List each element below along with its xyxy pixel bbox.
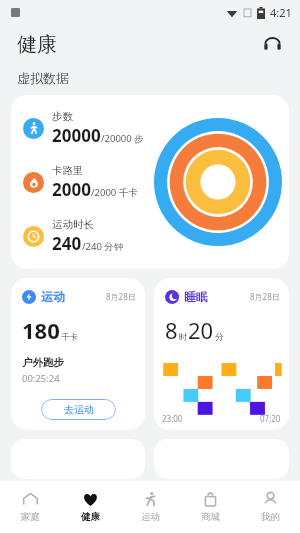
button[interactable]: 运动 [120, 481, 180, 533]
staticText: /2000 千卡 [91, 186, 138, 199]
staticText: 运动 [141, 511, 160, 523]
staticText: 00:25:24 [22, 372, 60, 385]
staticText: 步数 [52, 110, 73, 123]
staticText: 虚拟数据 [17, 70, 69, 86]
button[interactable]: 睡眠 [154, 278, 289, 430]
staticText: 卡路里 [52, 164, 84, 177]
staticText: 07:20 [260, 413, 281, 424]
staticText: 20 [188, 315, 214, 345]
staticText: 4:21 [270, 5, 292, 20]
staticText: 180 [22, 315, 60, 345]
staticText: 健康 [17, 32, 57, 57]
staticText: 20000 [52, 124, 101, 147]
staticText: 商城 [201, 511, 220, 523]
button[interactable]: 去运动 [41, 399, 116, 420]
staticText: 运动时长 [52, 218, 94, 231]
staticText: 我的 [261, 511, 280, 523]
staticText: /20000 步 [101, 132, 144, 145]
staticText: 分 [215, 332, 224, 343]
staticText: 家庭 [21, 511, 40, 523]
staticText: 健康 [81, 511, 100, 523]
staticText: 2000 [52, 178, 91, 201]
staticText: 8月28日 [106, 291, 136, 302]
button[interactable]: 家庭 [0, 481, 60, 533]
staticText: 8 [165, 315, 178, 345]
button[interactable]: 步数 [11, 95, 289, 269]
staticText: 8月28日 [250, 291, 280, 302]
staticText: /240 分钟 [82, 240, 124, 253]
button[interactable]: 我的 [240, 481, 300, 533]
button[interactable]: 运动 [11, 278, 145, 430]
staticText: 去运动 [64, 403, 94, 416]
staticText: 睡眠 [184, 289, 208, 304]
button[interactable]: 商城 [180, 481, 240, 533]
staticText: 240 [52, 232, 82, 255]
button[interactable]: 健康 [60, 481, 120, 533]
staticText: 千卡 [61, 332, 78, 343]
staticText: 运动 [41, 289, 65, 304]
staticText: 户外跑步 [22, 356, 64, 369]
staticText: 时 [179, 332, 188, 343]
button[interactable]: Headphones [257, 29, 287, 59]
staticText: 23:00 [162, 413, 183, 424]
